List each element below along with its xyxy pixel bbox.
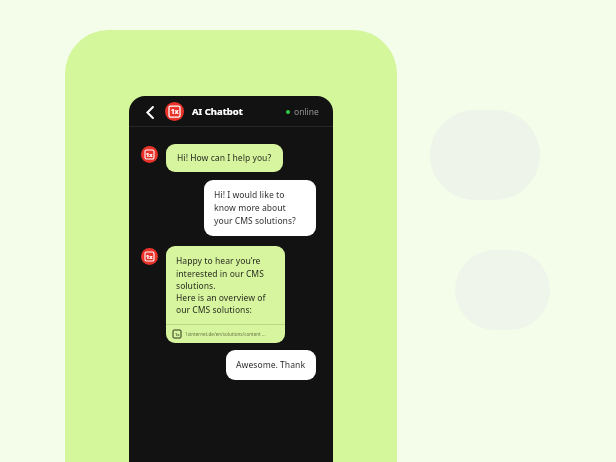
staticText: 1x: [171, 107, 179, 116]
button[interactable]: Awesome. Thank: [226, 350, 316, 380]
staticText: Awesome. Thank: [236, 359, 306, 371]
staticText: Happy to hear you’re interested in our C…: [176, 255, 275, 315]
staticText: 1x: [146, 253, 153, 261]
button[interactable]: Hi! I would like to know more about your…: [204, 180, 316, 236]
staticText: Hi! How can I help you?: [177, 152, 272, 164]
staticText: Hi! I would like to know more about your…: [214, 189, 306, 227]
button[interactable]: Hi! How can I help you?: [166, 144, 283, 172]
button[interactable]: 1x: [166, 325, 285, 343]
staticText: 1xinternet.de/en/solutions/content …: [185, 331, 266, 337]
staticText: online: [294, 106, 319, 118]
button[interactable]: Back: [140, 102, 160, 122]
staticText: 1x: [146, 151, 153, 159]
staticText: 1x: [175, 332, 180, 337]
staticText: AI Chatbot: [192, 105, 243, 118]
button[interactable]: Happy to hear you’re interested in our C…: [166, 246, 285, 343]
